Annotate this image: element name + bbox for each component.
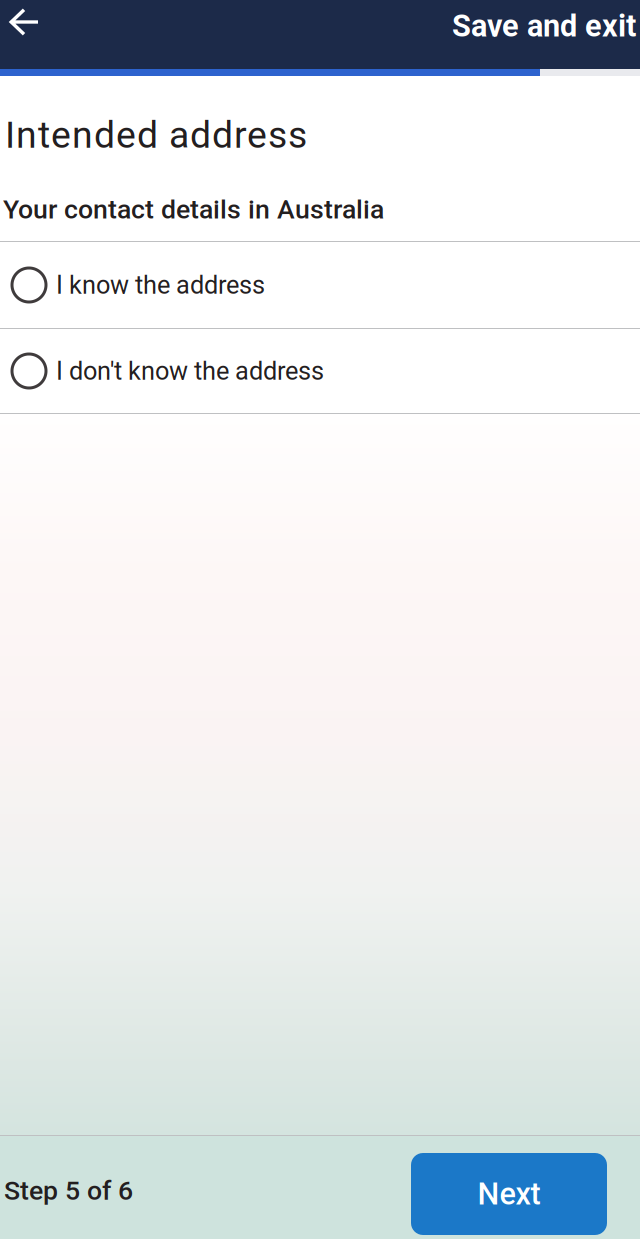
button[interactable]: Back — [0, 0, 53, 69]
button[interactable]: I know the address — [0, 242, 640, 328]
button[interactable]: I don't know the address — [0, 329, 640, 413]
button[interactable]: Save and exit — [450, 0, 640, 77]
staticText: Step 5 of 6 — [4, 1175, 133, 1206]
button[interactable]: Next — [411, 1153, 607, 1235]
staticText: I know the address — [56, 270, 265, 300]
staticText: Intended address — [5, 113, 307, 157]
staticText: I don't know the address — [56, 356, 324, 386]
staticText: Next — [477, 1176, 540, 1212]
staticText: Save and exit — [452, 8, 636, 44]
staticText: Your contact details in Australia — [3, 194, 384, 225]
